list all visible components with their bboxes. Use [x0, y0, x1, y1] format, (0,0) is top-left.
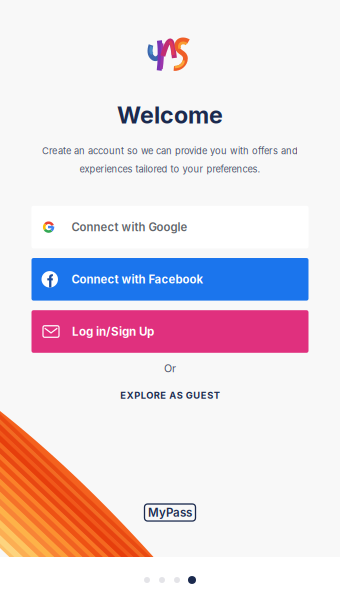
staticText: Log in/Sign Up	[72, 324, 154, 338]
button[interactable]: EXPLORE AS GUEST	[116, 386, 224, 405]
staticText: Create an account so we can provide you …	[42, 145, 298, 156]
button[interactable]: Connect with Facebook	[31, 258, 308, 301]
button[interactable]: Log in/Sign Up	[31, 310, 308, 353]
staticText: Or	[164, 362, 176, 375]
staticText: Connect with Google	[71, 220, 187, 234]
staticText: EXPLORE AS GUEST	[120, 390, 220, 401]
staticText: Connect with Facebook	[71, 272, 203, 286]
staticText: Welcome	[117, 101, 223, 129]
button[interactable]: Connect with Google	[31, 206, 308, 248]
staticText: MyPass	[148, 505, 192, 519]
staticText: experiences tailored to your preferences…	[79, 163, 260, 175]
